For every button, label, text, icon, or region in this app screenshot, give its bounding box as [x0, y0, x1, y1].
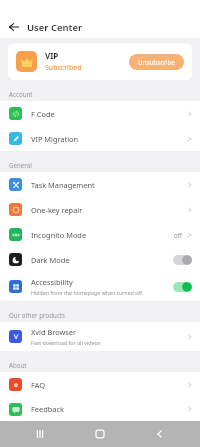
button[interactable]: Accessibility — [0, 272, 200, 301]
button[interactable]: Home — [80, 421, 120, 447]
staticText: Subscribed — [45, 63, 82, 73]
staticText: FAQ — [31, 380, 46, 390]
staticText: Hidden from the homepage when turned off… — [31, 289, 144, 296]
staticText: Incognito Mode — [31, 230, 87, 240]
staticText: Fast download for all videos — [31, 339, 101, 346]
staticText: Account — [9, 90, 33, 98]
button[interactable]: Back — [6, 19, 22, 35]
staticText: About — [9, 361, 27, 369]
button[interactable]: Xvid Browser — [0, 322, 200, 351]
button[interactable]: Dark Mode — [0, 247, 200, 272]
button[interactable]: FAQ — [0, 372, 200, 397]
button[interactable]: VIP — [8, 43, 192, 80]
staticText: Task Management — [31, 180, 95, 190]
button[interactable]: F Code — [0, 101, 200, 126]
staticText: VIP — [45, 50, 59, 61]
button[interactable]: Accessibility switch — [173, 282, 192, 292]
staticText: VIP Migration — [31, 134, 79, 144]
staticText: Unsubscribe — [138, 58, 175, 66]
button[interactable]: Incognito Mode — [0, 222, 200, 247]
staticText: Feedback — [31, 404, 64, 414]
button[interactable]: Recent apps — [20, 421, 60, 447]
staticText: off — [174, 231, 183, 239]
staticText: One-key repair — [31, 205, 83, 215]
button[interactable]: One-key repair — [0, 197, 200, 222]
staticText: Our other products — [9, 311, 66, 319]
button[interactable]: Task Management — [0, 172, 200, 197]
button[interactable]: Dark Mode switch — [173, 255, 192, 265]
button[interactable]: Feedback — [0, 397, 200, 421]
staticText: Accessibility — [31, 277, 73, 287]
staticText: Xvid Browser — [31, 327, 77, 337]
staticText: User Center — [27, 21, 83, 34]
button[interactable]: Back — [140, 421, 180, 447]
button[interactable]: VIP Migration — [0, 126, 200, 151]
button[interactable]: Unsubscribe — [129, 54, 184, 70]
staticText: General — [9, 161, 32, 169]
staticText: F Code — [31, 109, 55, 119]
staticText: Dark Mode — [31, 255, 70, 265]
